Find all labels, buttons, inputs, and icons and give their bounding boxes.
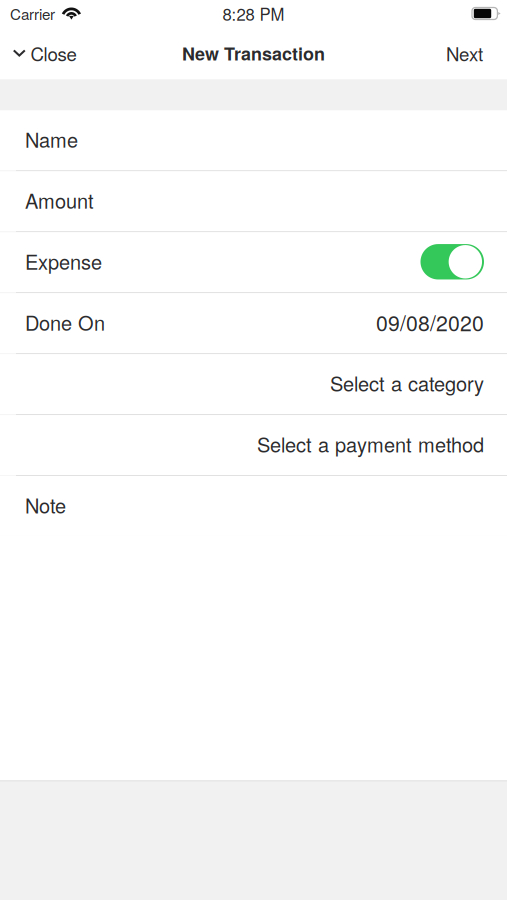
staticText: Amount — [25, 186, 94, 214]
staticText: 8:28 PM — [222, 2, 284, 25]
button[interactable]: Name — [0, 110, 507, 170]
button[interactable]: Select a payment method — [0, 415, 507, 475]
button[interactable]: Note — [0, 476, 507, 536]
button[interactable]: Done On — [0, 293, 507, 353]
staticText: 09/08/2020 — [376, 307, 484, 337]
staticText: Next — [446, 40, 483, 67]
staticText: Done On — [25, 308, 105, 336]
staticText: Select a category — [330, 369, 484, 397]
button[interactable]: Close — [0, 29, 89, 78]
staticText: Expense — [25, 247, 102, 275]
staticText: Close — [31, 40, 77, 67]
staticText: Select a payment method — [257, 430, 484, 458]
button[interactable]: Amount — [0, 171, 507, 231]
staticText: Note — [25, 491, 66, 519]
button[interactable]: Next — [434, 29, 507, 78]
staticText: Carrier — [10, 3, 55, 24]
staticText: Name — [25, 125, 78, 153]
staticText: New Transaction — [182, 40, 325, 66]
button[interactable]: Expense — [0, 232, 507, 292]
button[interactable]: Select a category — [0, 354, 507, 414]
